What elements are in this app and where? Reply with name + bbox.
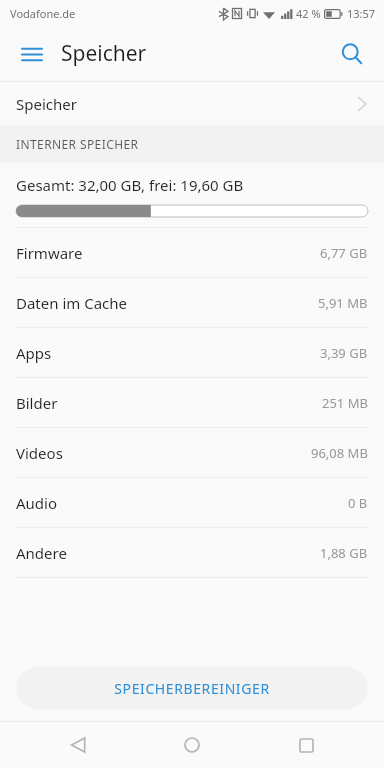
button[interactable]: Bilder bbox=[0, 378, 384, 427]
button[interactable]: SPEICHERBEREINIGER bbox=[16, 667, 368, 709]
staticText: Audio bbox=[16, 493, 58, 513]
staticText: Vodafone.de bbox=[10, 6, 76, 21]
staticText: 3,39 GB bbox=[320, 344, 368, 362]
staticText: 96,08 MB bbox=[311, 444, 368, 462]
staticText: Bilder bbox=[16, 393, 58, 413]
staticText: Gesamt: 32,00 GB, frei: 19,60 GB bbox=[16, 175, 244, 195]
button[interactable]: Videos bbox=[0, 428, 384, 477]
button[interactable]: Audio bbox=[0, 478, 384, 527]
staticText: 6,77 GB bbox=[320, 244, 368, 262]
staticText: Firmware bbox=[16, 243, 83, 263]
staticText: Speicher bbox=[16, 94, 77, 114]
staticText: SPEICHERBEREINIGER bbox=[114, 679, 270, 698]
staticText: Apps bbox=[16, 343, 52, 363]
staticText: 0 B bbox=[348, 494, 368, 512]
button[interactable]: Search bbox=[330, 32, 374, 76]
staticText: Videos bbox=[16, 443, 63, 463]
button[interactable]: Apps bbox=[0, 328, 384, 377]
staticText: Speicher bbox=[61, 39, 147, 68]
button[interactable]: Recent apps bbox=[270, 722, 342, 768]
staticText: 13:57 bbox=[347, 6, 376, 21]
staticText: 42 % bbox=[296, 6, 321, 21]
button[interactable]: Daten im Cache bbox=[0, 278, 384, 327]
staticText: 1,88 GB bbox=[320, 544, 368, 562]
staticText: Daten im Cache bbox=[16, 293, 128, 313]
button[interactable]: Menu bbox=[10, 32, 54, 76]
staticText: Andere bbox=[16, 543, 67, 563]
button[interactable]: Andere bbox=[0, 528, 384, 577]
button[interactable]: Home bbox=[156, 722, 228, 768]
staticText: INTERNER SPEICHER bbox=[16, 136, 139, 152]
button[interactable]: Speicher bbox=[0, 82, 384, 125]
button[interactable]: Back bbox=[42, 722, 114, 768]
staticText: 5,91 MB bbox=[318, 294, 368, 312]
staticText: 251 MB bbox=[322, 394, 368, 412]
button[interactable]: Firmware bbox=[0, 228, 384, 277]
